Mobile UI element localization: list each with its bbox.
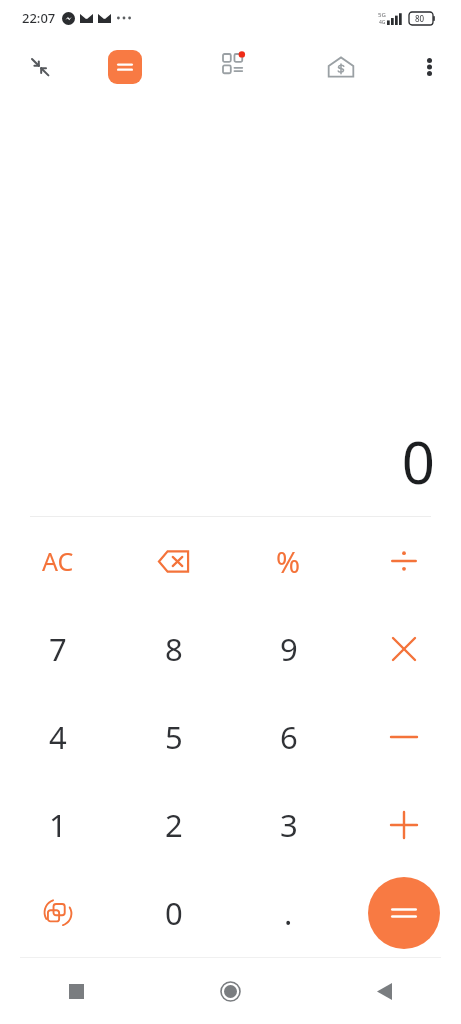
- button[interactable]: 6: [231, 693, 346, 781]
- other: Minus: [391, 735, 417, 739]
- button[interactable]: AC: [0, 517, 116, 605]
- other: Divide: [390, 547, 418, 575]
- button[interactable]: Recents: [0, 958, 153, 1024]
- button[interactable]: Collapse: [20, 47, 60, 87]
- button[interactable]: 3: [231, 781, 346, 869]
- button[interactable]: Plus: [346, 781, 461, 869]
- staticText: %: [276, 542, 301, 581]
- button[interactable]: 5: [116, 693, 231, 781]
- button[interactable]: 0: [116, 869, 231, 957]
- button[interactable]: .: [231, 869, 346, 957]
- button[interactable]: 8: [116, 605, 231, 693]
- other: Unit converter: [44, 899, 72, 927]
- staticText: 1: [49, 804, 67, 846]
- staticText: 8: [165, 628, 183, 670]
- button[interactable]: Mortgage: [320, 46, 362, 88]
- button[interactable]: 2: [116, 781, 231, 869]
- button[interactable]: Divide: [346, 517, 461, 605]
- button[interactable]: Calculator: [108, 50, 142, 84]
- staticText: 2: [165, 804, 183, 846]
- staticText: AC: [42, 544, 74, 578]
- other: Backspace: [158, 550, 190, 573]
- button[interactable]: 9: [231, 605, 346, 693]
- other: Plus: [391, 812, 417, 838]
- staticText: 6: [280, 716, 298, 758]
- staticText: 9: [280, 628, 298, 670]
- button[interactable]: Home: [153, 958, 307, 1024]
- button[interactable]: 7: [0, 605, 116, 693]
- staticText: 80: [415, 13, 425, 24]
- staticText: 0: [165, 892, 183, 934]
- button[interactable]: 1: [0, 781, 116, 869]
- staticText: 3: [280, 804, 298, 846]
- button[interactable]: Back: [307, 958, 461, 1024]
- staticText: 22:07: [22, 9, 56, 27]
- staticText: 5: [165, 716, 183, 758]
- button[interactable]: Minus: [346, 693, 461, 781]
- button[interactable]: Equals: [368, 877, 440, 949]
- button[interactable]: More options: [407, 45, 451, 89]
- button[interactable]: %: [231, 517, 346, 605]
- button[interactable]: Unit converter: [0, 869, 116, 957]
- button[interactable]: Backspace: [116, 517, 231, 605]
- staticText: 0: [401, 422, 435, 501]
- staticText: 5G: [378, 11, 386, 19]
- other: Multiply: [393, 638, 415, 660]
- staticText: 4G: [379, 19, 386, 26]
- button[interactable]: Equals: [346, 869, 461, 957]
- button[interactable]: 4: [0, 693, 116, 781]
- button[interactable]: Multiply: [346, 605, 461, 693]
- button[interactable]: More tools: [216, 47, 256, 87]
- staticText: 4: [49, 716, 67, 758]
- staticText: .: [284, 892, 293, 934]
- staticText: 7: [49, 628, 67, 670]
